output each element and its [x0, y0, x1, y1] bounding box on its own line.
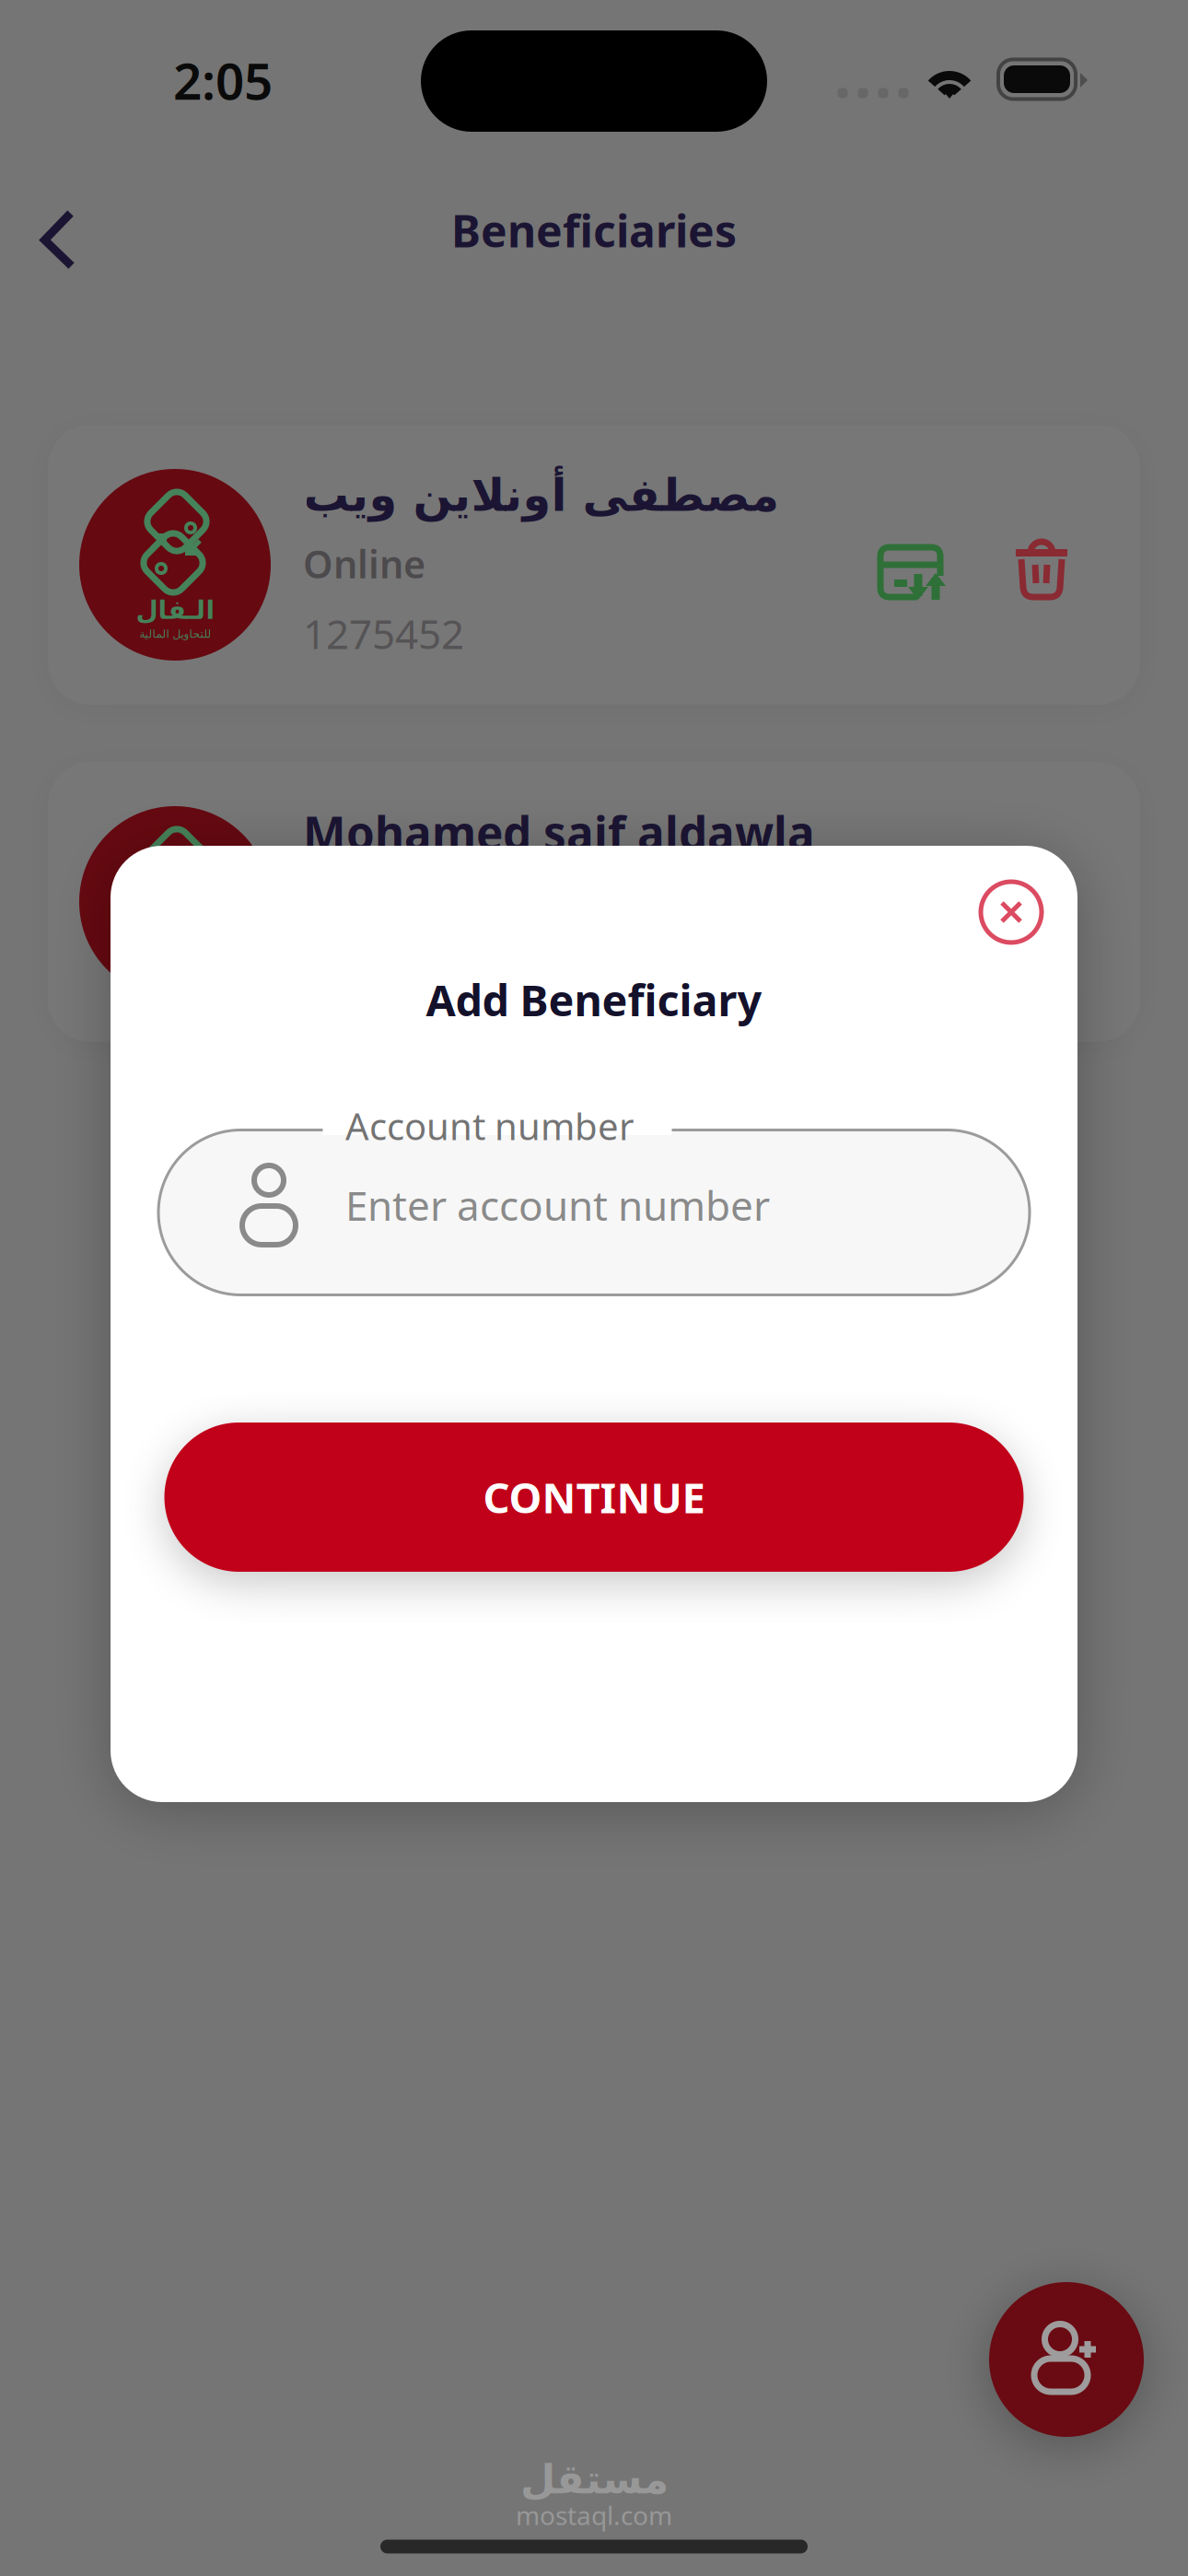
staticText: للتحاويل المالية: [139, 628, 211, 640]
staticText: Mohamed saif aldawla: [303, 802, 815, 862]
staticText: الـفال: [135, 595, 215, 625]
staticText: Enter account number: [345, 1178, 770, 1232]
staticText: mostaql.com: [516, 2498, 672, 2532]
staticText: Add Beneficiary: [426, 971, 762, 1028]
staticText: مصطفى أونلاين ويب: [303, 469, 779, 521]
staticText: Account number: [345, 1101, 635, 1150]
button[interactable]: Add beneficiary: [989, 2282, 1144, 2437]
staticText: 1275453: [303, 948, 464, 1002]
staticText: مستقل: [520, 2456, 668, 2502]
button[interactable]: الـفال: [48, 425, 1140, 705]
staticText: 2:05: [173, 47, 273, 114]
button[interactable]: الـفال: [48, 762, 1140, 1042]
button[interactable]: Close: [976, 877, 1046, 947]
staticText: CONTINUE: [483, 1469, 705, 1525]
staticText: 1275452: [303, 606, 464, 660]
staticText: Online: [303, 538, 425, 589]
staticText: Beneficiaries: [451, 201, 737, 260]
button[interactable]: Back: [13, 187, 103, 292]
button[interactable]: CONTINUE: [164, 1423, 1024, 1572]
